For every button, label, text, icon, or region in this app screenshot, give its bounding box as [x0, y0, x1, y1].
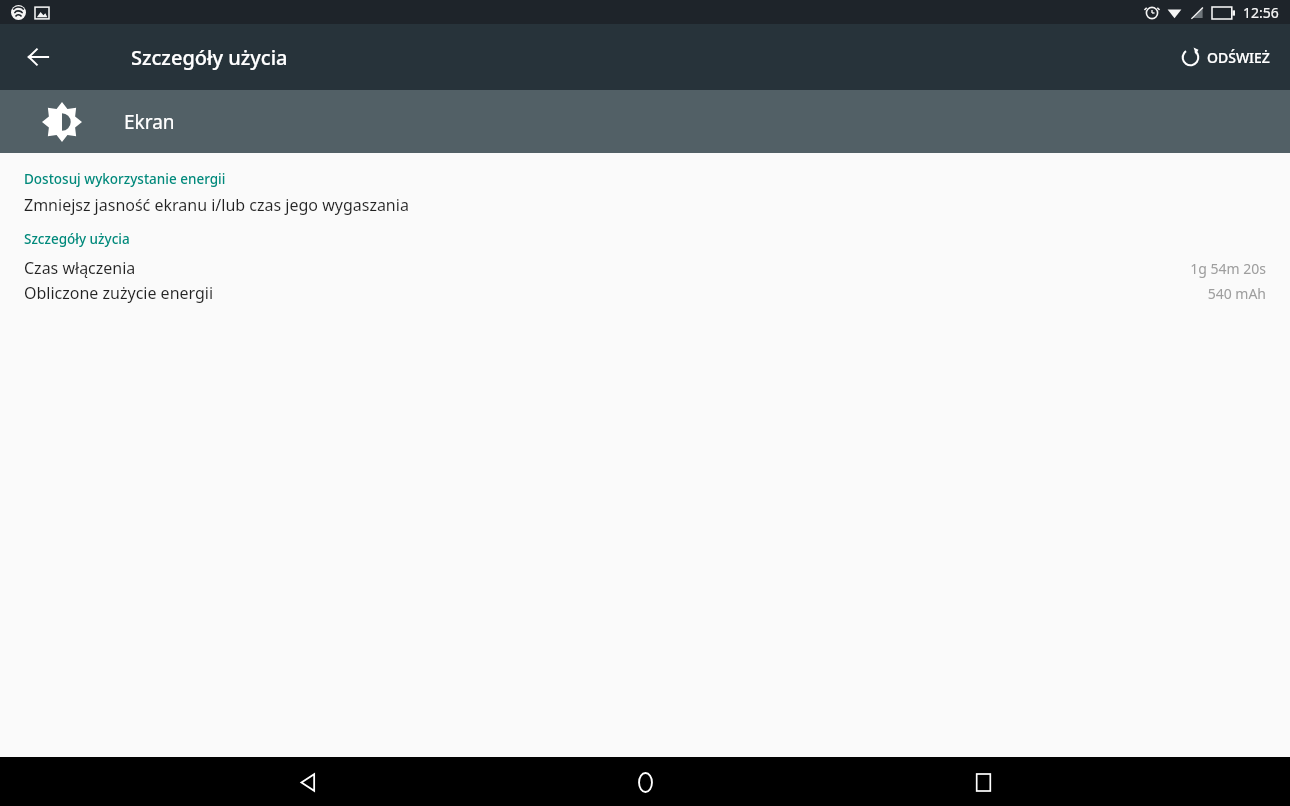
staticText: 12:56	[1243, 3, 1279, 22]
staticText: Czas włączenia	[24, 257, 136, 279]
staticText: ODŚWIEŻ	[1207, 48, 1270, 67]
button[interactable]: Back	[16, 35, 60, 79]
staticText: 1g 54m 20s	[1190, 259, 1266, 278]
button[interactable]: Home	[623, 760, 667, 804]
staticText: Szczegóły użycia	[24, 230, 130, 248]
button[interactable]: Ekran	[0, 90, 1290, 153]
button[interactable]: ODŚWIEŻ	[1175, 38, 1276, 77]
staticText: Szczegóły użycia	[131, 44, 288, 71]
staticText: Zmniejsz jasność ekranu i/lub czas jego …	[24, 194, 409, 216]
staticText: 540 mAh	[1207, 284, 1266, 303]
staticText: Dostosuj wykorzystanie energii	[24, 170, 226, 188]
button[interactable]: Recents	[961, 760, 1005, 804]
staticText: Obliczone zużycie energii	[24, 282, 214, 304]
button[interactable]: Back	[285, 760, 329, 804]
staticText: Ekran	[124, 109, 175, 135]
